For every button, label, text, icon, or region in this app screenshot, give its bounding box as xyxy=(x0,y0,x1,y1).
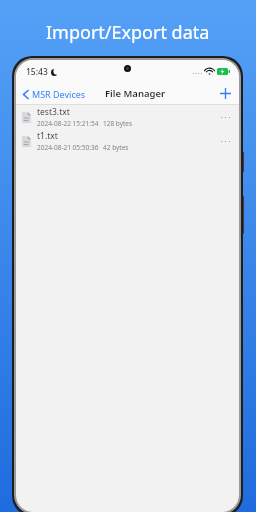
staticText: 15:43 xyxy=(26,66,48,78)
staticText: 128 bytes xyxy=(103,119,133,128)
staticText: t1.txt xyxy=(37,130,58,142)
staticText: Import/Export data xyxy=(46,20,210,45)
staticText: 42 bytes xyxy=(103,143,129,152)
staticText: File Manager xyxy=(105,87,166,100)
button[interactable]: t1.txt xyxy=(16,129,239,153)
button[interactable]: More options for t1.txt xyxy=(215,133,236,150)
staticText: 2024-08-21 05:50:36 xyxy=(37,143,99,152)
button[interactable]: More options for test3.txt xyxy=(215,109,236,126)
staticText: test3.txt xyxy=(37,106,70,118)
button[interactable]: Add file xyxy=(212,85,239,102)
button[interactable]: test3.txt xyxy=(16,105,239,129)
staticText: 2024-08-22 15:21:54 xyxy=(37,119,99,128)
button[interactable]: MSR Devices xyxy=(16,85,90,103)
staticText: MSR Devices xyxy=(32,88,86,100)
